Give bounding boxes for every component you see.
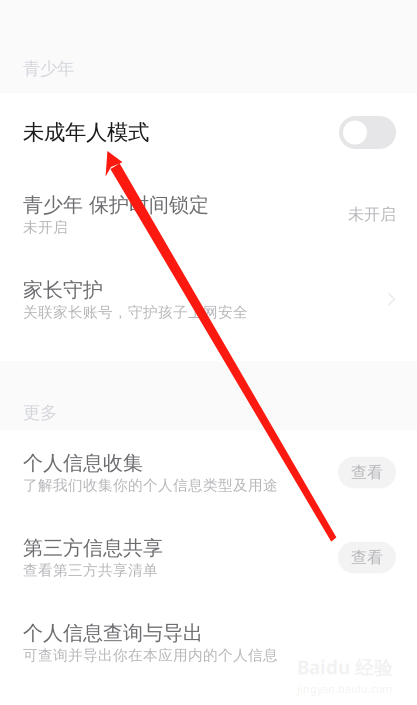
staticText: 未成年人模式: [23, 119, 149, 146]
button[interactable]: 第三方信息共享: [0, 515, 417, 600]
staticText: 未开启: [23, 218, 68, 236]
staticText: 查看: [351, 463, 383, 482]
staticText: 可查询并导出你在本应用内的个人信息: [23, 646, 278, 664]
staticText: 青少年 保护时间锁定: [23, 193, 209, 217]
staticText: 关联家长账号，守护孩子上网安全: [23, 303, 248, 321]
staticText: 第三方信息共享: [23, 536, 163, 560]
button[interactable]: 青少年 保护时间锁定: [0, 172, 417, 257]
staticText: 查看: [351, 548, 383, 567]
button[interactable]: 个人信息查询与导出: [0, 600, 417, 685]
staticText: 个人信息查询与导出: [23, 621, 203, 645]
staticText: 个人信息收集: [23, 451, 143, 475]
button[interactable]: 个人信息收集: [0, 430, 417, 515]
staticText: 更多: [23, 402, 57, 423]
staticText: 未开启: [348, 205, 396, 224]
staticText: 了解我们收集你的个人信息类型及用途: [23, 476, 278, 494]
staticText: 家长守护: [23, 278, 103, 302]
button[interactable]: 未成年人模式: [0, 93, 417, 172]
staticText: Baidu 经验: [297, 655, 393, 680]
staticText: 查看第三方共享清单: [23, 561, 158, 579]
staticText: 青少年: [23, 58, 74, 79]
staticText: jingyan.baidu.com: [297, 682, 392, 696]
button[interactable]: 家长守护: [0, 257, 417, 361]
